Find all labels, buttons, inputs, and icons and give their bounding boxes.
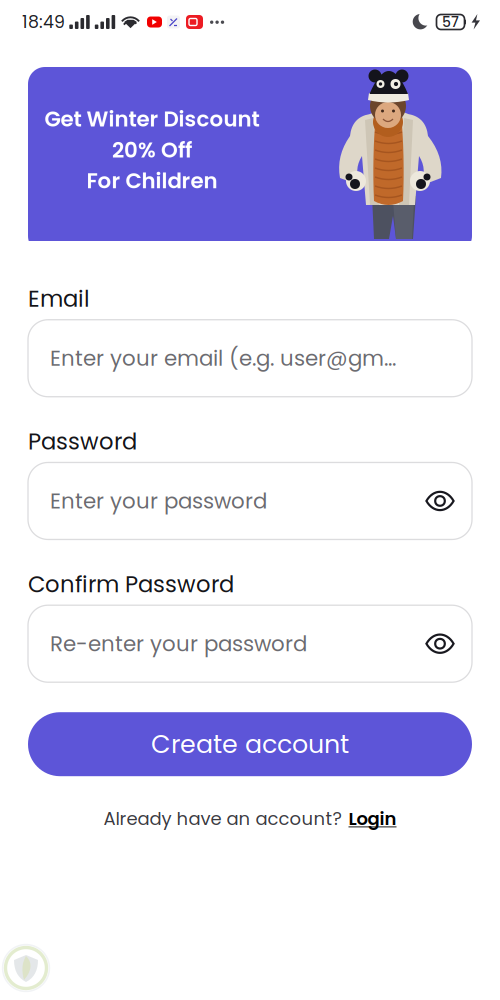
button[interactable]: Show password [425, 491, 455, 511]
button[interactable]: Already have an account? [103, 802, 396, 835]
staticText: Email [28, 283, 90, 315]
staticText: 57 [442, 12, 459, 32]
staticText: Enter your password [50, 486, 267, 516]
staticText: Login [348, 806, 396, 831]
staticText: Password [28, 426, 137, 457]
staticText: 18:49 [22, 10, 65, 34]
staticText: Confirm Password [28, 568, 234, 600]
staticText: For Children [86, 166, 217, 196]
staticText: Enter your email (e.g. user@gm… [50, 343, 396, 373]
staticText: Get Winter Discount [44, 104, 259, 134]
button[interactable]: Show password [425, 634, 455, 654]
staticText: 20% Off [112, 135, 192, 165]
staticText: Create account [151, 726, 349, 762]
staticText: Already have an account? [103, 806, 341, 831]
button[interactable]: Create account [28, 712, 472, 776]
staticText: Re-enter your password [50, 629, 307, 659]
